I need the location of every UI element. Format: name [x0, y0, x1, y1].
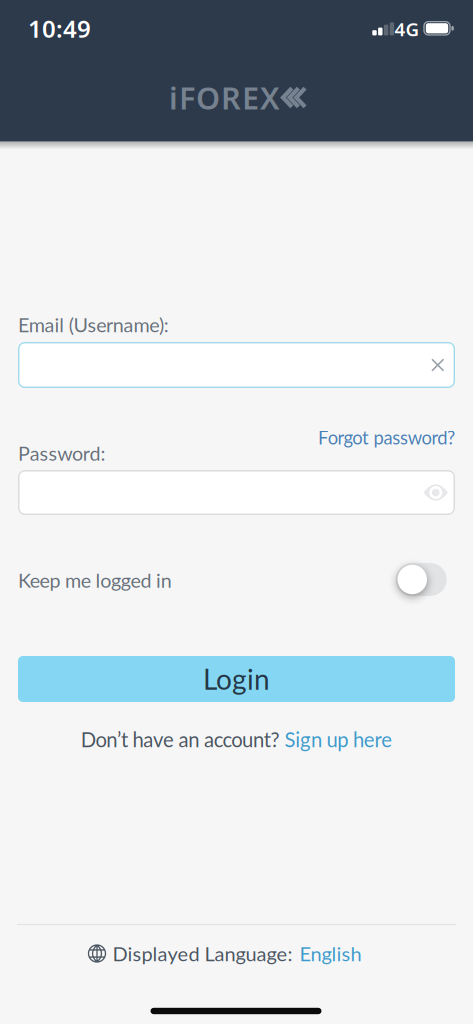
- staticText: iFOREX: [169, 77, 280, 118]
- staticText: 10:49: [28, 13, 91, 44]
- staticText: Keep me logged in: [18, 568, 172, 592]
- staticText: Don’t have an account?: [81, 727, 279, 752]
- button[interactable]: Email (Username): [18, 342, 455, 388]
- button[interactable]: Keep me logged in: [396, 563, 447, 596]
- staticText: Password:: [18, 441, 105, 465]
- staticText: Forgot password?: [318, 426, 455, 449]
- staticText: 4G: [394, 17, 419, 41]
- staticText: Sign up here: [284, 727, 392, 752]
- button[interactable]: Forgot password?: [318, 426, 455, 449]
- staticText: Login: [203, 662, 270, 696]
- staticText: English: [299, 941, 361, 965]
- button[interactable]: Displayed Language:: [88, 941, 361, 965]
- button[interactable]: Login: [18, 656, 455, 702]
- button[interactable]: Clear email: [432, 359, 443, 371]
- button[interactable]: Sign up here: [284, 727, 392, 752]
- button[interactable]: Show password: [423, 485, 448, 500]
- staticText: Email (Username):: [18, 313, 169, 336]
- button[interactable]: Password: [18, 470, 455, 515]
- staticText: Displayed Language:: [112, 941, 292, 965]
